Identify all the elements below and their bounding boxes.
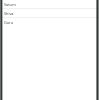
button[interactable]: Shiva bbox=[0, 9, 99, 18]
staticText: Shiva bbox=[4, 11, 14, 16]
button[interactable]: Guru bbox=[0, 18, 99, 27]
staticText: Saturn bbox=[4, 2, 16, 7]
button[interactable]: Saturn bbox=[0, 0, 99, 9]
staticText: Guru bbox=[4, 20, 14, 25]
